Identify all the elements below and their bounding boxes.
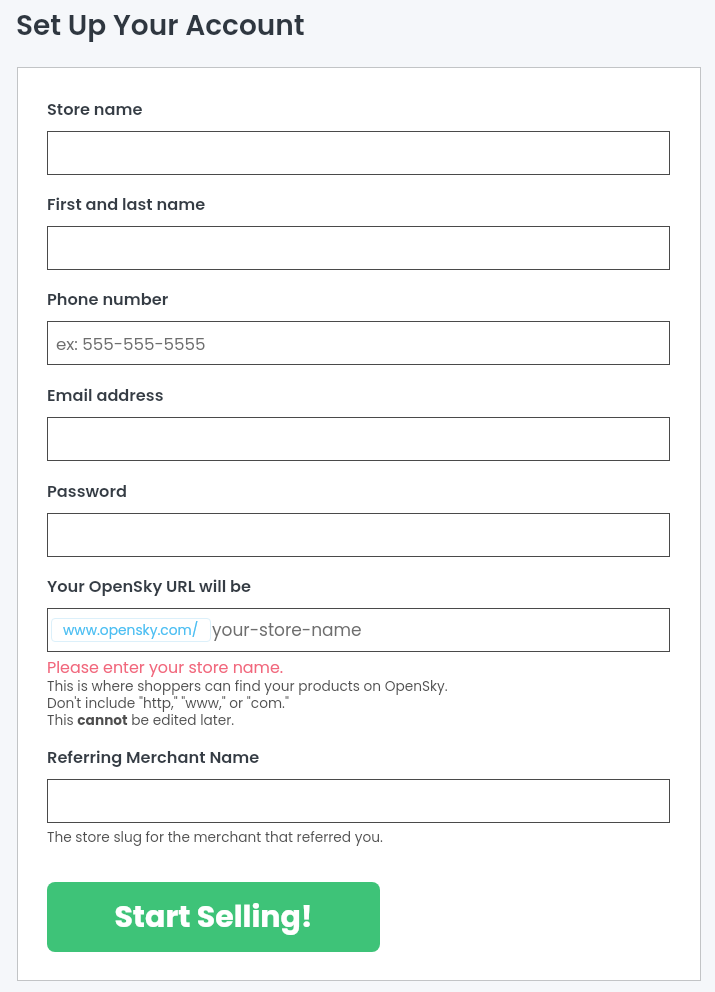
staticText: Start Selling! [114,896,313,938]
staticText: Don't include "http," "www," or "com." [47,694,289,713]
staticText: ex: 555-555-5555 [56,332,206,355]
staticText: Set Up Your Account [16,6,305,45]
staticText: The store slug for the merchant that ref… [47,828,383,847]
staticText: Phone number [47,288,169,311]
staticText: This is where shoppers can find your pro… [47,677,448,696]
button[interactable]: Store name [47,131,670,175]
button[interactable]: Password [47,513,670,557]
staticText: Email address [47,384,164,407]
staticText: Your OpenSky URL will be [47,575,251,598]
button[interactable]: Phone number [47,321,670,365]
staticText: First and last name [47,193,206,216]
button[interactable]: First and last name [47,226,670,270]
button[interactable]: Email address [47,417,670,461]
button[interactable]: Referring Merchant Name [47,779,670,823]
staticText: Referring Merchant Name [47,746,260,769]
staticText: Please enter your store name. [47,656,284,678]
staticText: your-store-name [212,618,362,642]
button[interactable]: Your OpenSky URL [47,608,670,652]
staticText: Store name [47,98,143,121]
staticText: This cannot be edited later. [47,711,235,730]
staticText: www.opensky.com/ [63,621,199,640]
button[interactable]: Start Selling! [47,882,380,952]
staticText: Password [47,480,127,503]
